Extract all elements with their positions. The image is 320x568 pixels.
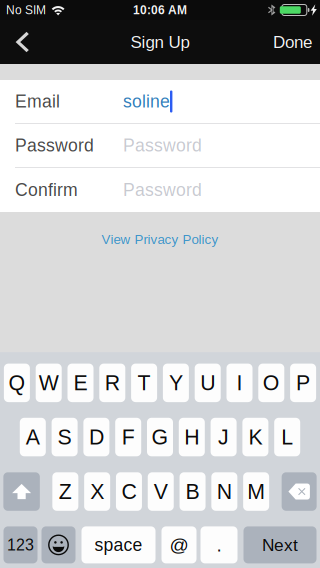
staticText: space bbox=[94, 535, 142, 555]
staticText: B bbox=[186, 480, 200, 503]
button[interactable]: T bbox=[131, 364, 157, 402]
button[interactable]: G bbox=[147, 418, 173, 456]
staticText: O bbox=[263, 371, 280, 395]
button[interactable]: E bbox=[67, 364, 93, 402]
staticText: X bbox=[90, 480, 104, 503]
staticText: M bbox=[247, 480, 265, 503]
staticText: Password bbox=[123, 180, 202, 200]
button[interactable]: . bbox=[200, 526, 237, 563]
staticText: E bbox=[73, 371, 87, 395]
button[interactable]: J bbox=[211, 418, 237, 456]
button[interactable]: B bbox=[180, 472, 206, 511]
staticText: No SIM bbox=[6, 3, 46, 17]
staticText: Confirm bbox=[15, 180, 78, 200]
staticText: W bbox=[39, 371, 59, 395]
staticText: J bbox=[218, 425, 229, 449]
button[interactable]: R bbox=[99, 364, 125, 402]
staticText: S bbox=[58, 425, 72, 449]
staticText: A bbox=[26, 425, 40, 449]
button[interactable]: C bbox=[116, 472, 142, 511]
button[interactable]: Delete bbox=[282, 472, 317, 511]
button[interactable]: A bbox=[20, 418, 46, 456]
staticText: D bbox=[89, 425, 104, 449]
staticText: C bbox=[121, 480, 136, 503]
button[interactable]: @ bbox=[161, 526, 196, 563]
button[interactable]: space bbox=[81, 526, 155, 563]
button[interactable]: I bbox=[226, 364, 252, 402]
button[interactable]: O bbox=[258, 364, 284, 402]
button[interactable]: F bbox=[115, 418, 141, 456]
staticText: soline bbox=[123, 92, 170, 111]
staticText: F bbox=[122, 425, 135, 449]
button[interactable]: L bbox=[274, 418, 300, 456]
staticText: View Privacy Policy bbox=[101, 232, 218, 247]
staticText: I bbox=[236, 371, 242, 395]
staticText: T bbox=[138, 371, 151, 395]
button[interactable]: S bbox=[52, 418, 78, 456]
staticText: Sign Up bbox=[130, 32, 189, 51]
staticText: L bbox=[281, 425, 293, 449]
staticText: Password bbox=[15, 136, 94, 155]
button[interactable]: Back bbox=[0, 20, 56, 64]
staticText: V bbox=[154, 480, 168, 503]
staticText: G bbox=[151, 425, 168, 449]
button[interactable]: X bbox=[84, 472, 110, 511]
staticText: P bbox=[296, 371, 310, 395]
button[interactable]: View Privacy Policy bbox=[0, 230, 320, 248]
button[interactable]: D bbox=[83, 418, 109, 456]
staticText: Next bbox=[262, 535, 298, 554]
staticText: . bbox=[216, 534, 221, 555]
staticText: H bbox=[184, 425, 199, 449]
button[interactable]: Emoji keyboard bbox=[41, 526, 75, 563]
button[interactable]: V bbox=[148, 472, 174, 511]
staticText: Email bbox=[15, 92, 60, 111]
button[interactable]: Shift bbox=[3, 472, 40, 511]
staticText: K bbox=[248, 425, 262, 449]
button[interactable]: U bbox=[195, 364, 221, 402]
button[interactable]: W bbox=[36, 364, 62, 402]
staticText: U bbox=[200, 371, 215, 395]
button[interactable]: Z bbox=[52, 472, 78, 511]
staticText: @ bbox=[169, 534, 188, 555]
staticText: Y bbox=[169, 371, 183, 395]
staticText: Q bbox=[8, 371, 25, 395]
staticText: 123 bbox=[7, 536, 34, 554]
staticText: 10:06 AM bbox=[133, 3, 187, 17]
button[interactable]: N bbox=[211, 472, 237, 511]
button[interactable]: Q bbox=[4, 364, 30, 402]
staticText: R bbox=[105, 371, 120, 395]
button[interactable]: K bbox=[242, 418, 268, 456]
button[interactable]: M bbox=[243, 472, 269, 511]
button[interactable]: P bbox=[290, 364, 316, 402]
button[interactable]: 123 bbox=[3, 526, 37, 563]
staticText: Password bbox=[123, 136, 202, 155]
button[interactable]: Next bbox=[243, 526, 316, 563]
button[interactable]: Done bbox=[258, 20, 320, 64]
button[interactable]: H bbox=[179, 418, 205, 456]
staticText: Z bbox=[59, 480, 72, 503]
staticText: N bbox=[217, 480, 232, 503]
button[interactable]: Y bbox=[163, 364, 189, 402]
staticText: Done bbox=[273, 32, 312, 51]
